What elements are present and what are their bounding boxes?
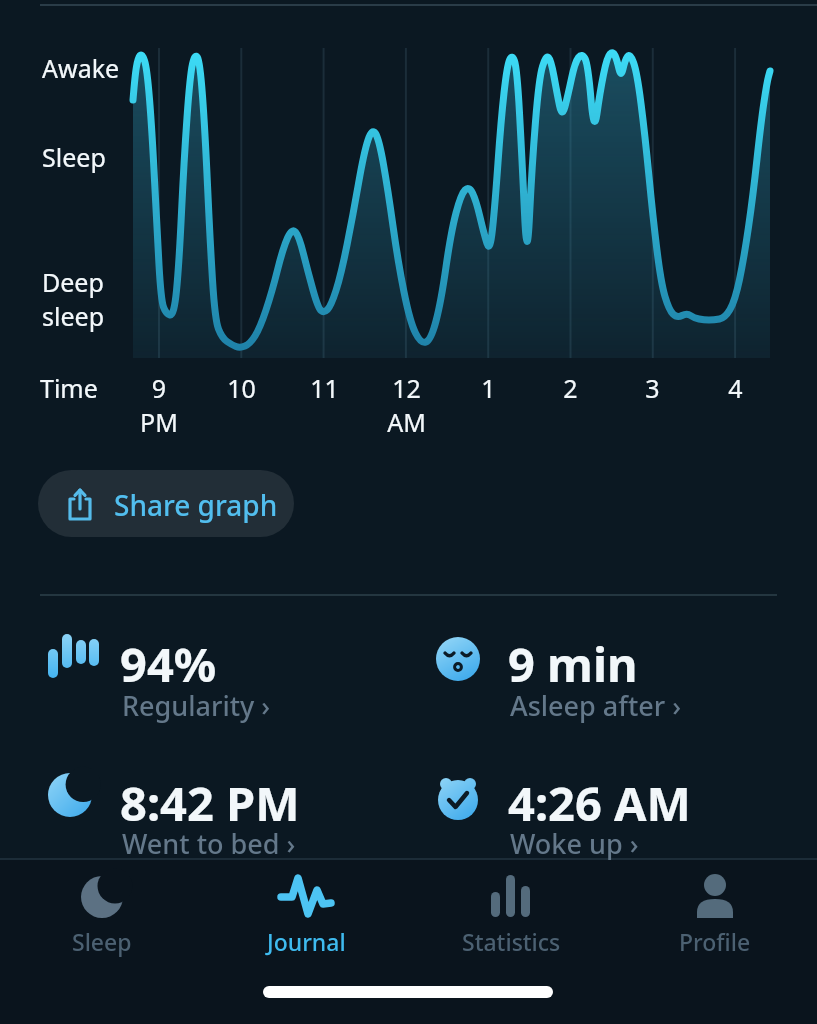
- staticText: Time: [40, 371, 98, 405]
- staticText: 11: [310, 371, 339, 405]
- staticText: 10: [227, 371, 256, 405]
- staticText: 4:26 AM: [508, 771, 691, 835]
- staticText: 8:42 PM: [120, 771, 300, 835]
- staticText: 9 PM: [140, 371, 178, 439]
- staticText: Regularity ›: [122, 687, 271, 724]
- staticText: 94%: [120, 632, 217, 696]
- button[interactable]: 9 min: [428, 625, 778, 730]
- staticText: Awake: [42, 51, 120, 85]
- button[interactable]: Profile: [645, 870, 785, 962]
- staticText: Woke up ›: [510, 825, 639, 862]
- button[interactable]: Statistics: [441, 870, 581, 962]
- button[interactable]: Share graph: [38, 470, 294, 537]
- button[interactable]: 4:26 AM: [428, 764, 778, 862]
- button[interactable]: 8:42 PM: [40, 764, 390, 862]
- staticText: 4: [728, 371, 743, 405]
- button[interactable]: 94%: [40, 625, 390, 730]
- staticText: Asleep after ›: [510, 687, 682, 724]
- button[interactable]: Sleep: [32, 870, 172, 962]
- staticText: Profile: [679, 926, 751, 957]
- staticText: Statistics: [462, 926, 561, 957]
- staticText: Sleep: [42, 140, 106, 174]
- staticText: 9 min: [508, 632, 638, 696]
- staticText: Went to bed ›: [122, 825, 296, 862]
- staticText: 1: [481, 371, 496, 405]
- staticText: 12 AM: [387, 371, 426, 439]
- staticText: 3: [645, 371, 660, 405]
- button[interactable]: Journal: [236, 870, 376, 962]
- staticText: Share graph: [114, 486, 278, 524]
- staticText: Deep sleep: [42, 265, 105, 333]
- staticText: Sleep: [72, 926, 132, 957]
- staticText: 2: [563, 371, 578, 405]
- staticText: Journal: [267, 926, 346, 957]
